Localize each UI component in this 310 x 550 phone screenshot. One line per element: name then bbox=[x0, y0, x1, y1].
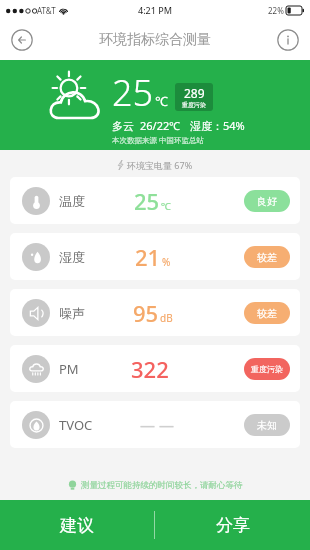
button[interactable]: TVOC bbox=[10, 401, 300, 448]
staticText: 25 bbox=[134, 186, 160, 216]
staticText: 较差 bbox=[257, 251, 277, 264]
staticText: ℃ bbox=[155, 92, 168, 110]
button[interactable]: 温度 bbox=[10, 177, 300, 224]
button[interactable]: 湿度 bbox=[10, 233, 300, 280]
staticText: 较差 bbox=[257, 307, 277, 320]
staticText: % bbox=[162, 255, 171, 269]
staticText: PM bbox=[59, 360, 79, 378]
staticText: 26/22℃ bbox=[140, 118, 181, 133]
staticText: 95 bbox=[133, 298, 159, 328]
staticText: AT&T bbox=[37, 5, 56, 16]
staticText: 测量过程可能持续的时间较长，请耐心等待 bbox=[81, 480, 243, 491]
button[interactable]: 建议 bbox=[0, 500, 154, 550]
staticText: 本次数据来源 中国环监总站 bbox=[112, 135, 204, 145]
button[interactable]: Info bbox=[274, 26, 302, 54]
staticText: 21 bbox=[135, 242, 161, 272]
staticText: — — bbox=[140, 415, 174, 435]
staticText: 环境指标综合测量 bbox=[99, 31, 211, 49]
staticText: 322 bbox=[131, 354, 169, 384]
button[interactable]: PM bbox=[10, 345, 300, 392]
staticText: 噪声 bbox=[59, 305, 85, 321]
staticText: 未知 bbox=[257, 419, 277, 432]
staticText: 分享 bbox=[216, 515, 250, 536]
staticText: 多云 bbox=[112, 119, 134, 133]
button[interactable]: 噪声 bbox=[10, 289, 300, 336]
staticText: TVOC bbox=[59, 416, 93, 434]
staticText: 良好 bbox=[257, 195, 277, 208]
button[interactable]: 未知 bbox=[244, 414, 290, 436]
staticText: ℃ bbox=[161, 199, 171, 213]
staticText: 289 bbox=[184, 85, 205, 101]
staticText: 环境宝电量 67% bbox=[127, 159, 193, 171]
staticText: 温度 bbox=[59, 193, 85, 209]
staticText: 25 bbox=[112, 68, 154, 117]
staticText: 4:21 PM bbox=[138, 4, 172, 16]
button[interactable]: Back bbox=[8, 26, 36, 54]
staticText: dB bbox=[160, 311, 173, 325]
staticText: 湿度 bbox=[59, 249, 85, 265]
button[interactable]: 较差 bbox=[244, 246, 290, 268]
button[interactable]: 较差 bbox=[244, 302, 290, 324]
staticText: 22% bbox=[268, 5, 284, 16]
button[interactable]: 良好 bbox=[244, 190, 290, 212]
staticText: 重度污染 bbox=[182, 101, 206, 109]
staticText: 建议 bbox=[60, 515, 94, 536]
staticText: 湿度：54% bbox=[190, 118, 245, 133]
button[interactable]: 分享 bbox=[155, 500, 310, 550]
button[interactable]: 重度污染 bbox=[244, 358, 290, 380]
staticText: 重度污染 bbox=[251, 364, 283, 374]
